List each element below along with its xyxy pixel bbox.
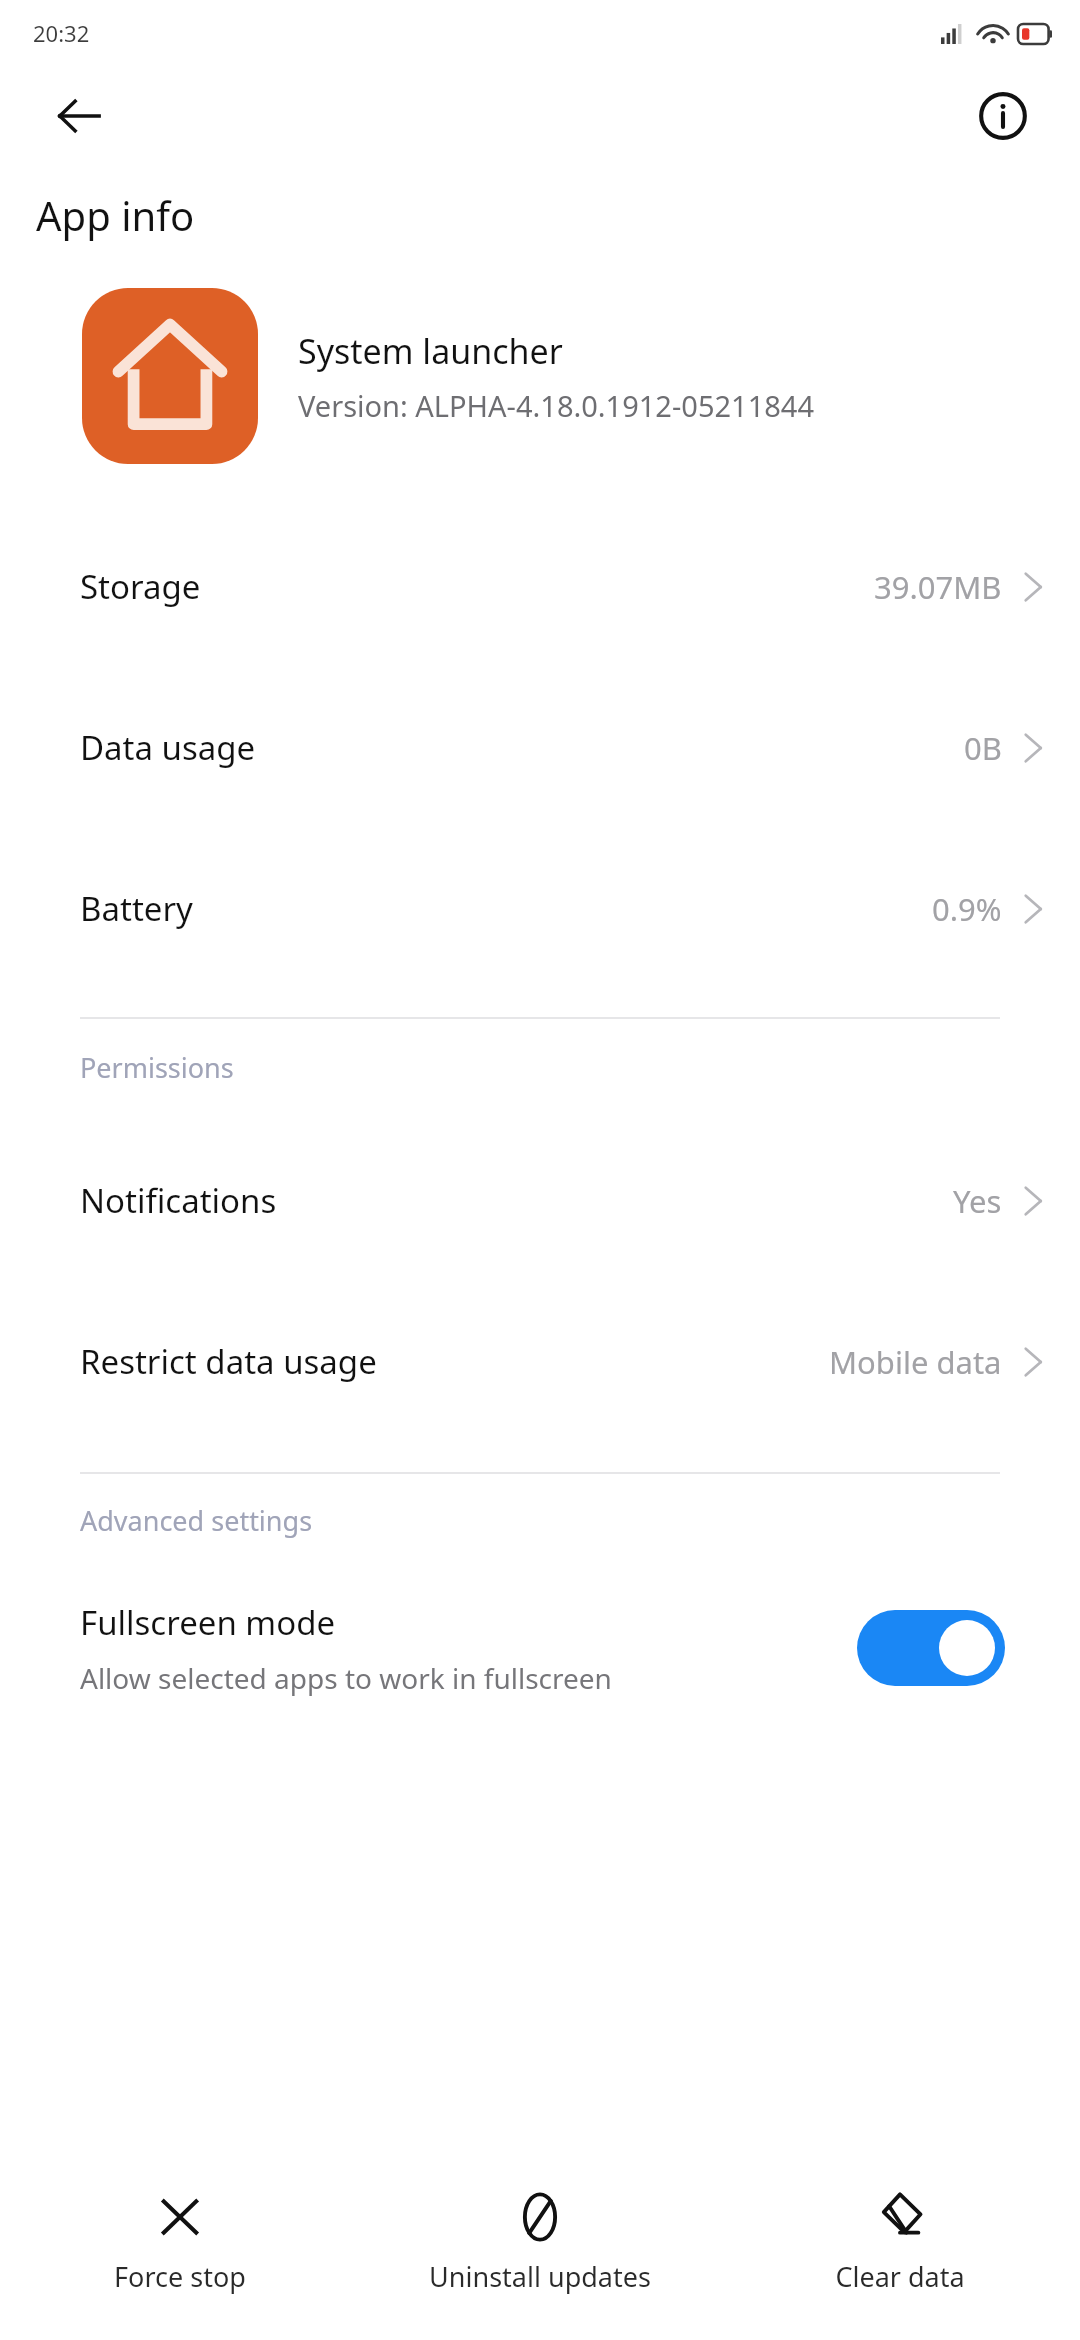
staticText: System launcher <box>298 328 563 374</box>
staticText: 39.07MB <box>874 566 1002 608</box>
button[interactable]: Back <box>42 79 116 153</box>
staticText: Allow selected apps to work in fullscree… <box>80 1659 612 1697</box>
staticText: Force stop <box>114 2258 246 2295</box>
staticText: Data usage <box>80 725 256 770</box>
button[interactable]: Notifications <box>0 1120 1080 1281</box>
staticText: Clear data <box>835 2258 965 2295</box>
staticText: Fullscreen mode <box>80 1600 336 1645</box>
staticText: 0.9% <box>932 888 1002 930</box>
staticText: Storage <box>80 564 201 609</box>
button[interactable]: Battery <box>0 828 1080 989</box>
staticText: Notifications <box>80 1178 277 1223</box>
button[interactable]: Clear data <box>720 2180 1080 2340</box>
button[interactable]: App details <box>966 79 1040 153</box>
button[interactable]: Restrict data usage <box>0 1281 1080 1442</box>
staticText: Uninstall updates <box>429 2258 651 2295</box>
staticText: Restrict data usage <box>80 1339 377 1384</box>
staticText: Advanced settings <box>80 1502 313 1539</box>
button[interactable]: Storage <box>0 506 1080 667</box>
button[interactable]: Fullscreen mode <box>0 1573 1080 1723</box>
staticText: Permissions <box>80 1049 234 1086</box>
staticText: Battery <box>80 886 193 931</box>
staticText: Yes <box>953 1180 1002 1222</box>
staticText: App info <box>36 188 195 242</box>
staticText: 0B <box>964 727 1002 769</box>
button[interactable]: Uninstall updates <box>360 2180 720 2340</box>
button[interactable]: Data usage <box>0 667 1080 828</box>
staticText: Mobile data <box>829 1341 1002 1383</box>
staticText: 20:32 <box>33 18 90 48</box>
button[interactable]: Force stop <box>0 2180 360 2340</box>
staticText: Version: ALPHA-4.18.0.1912-05211844 <box>298 386 814 425</box>
